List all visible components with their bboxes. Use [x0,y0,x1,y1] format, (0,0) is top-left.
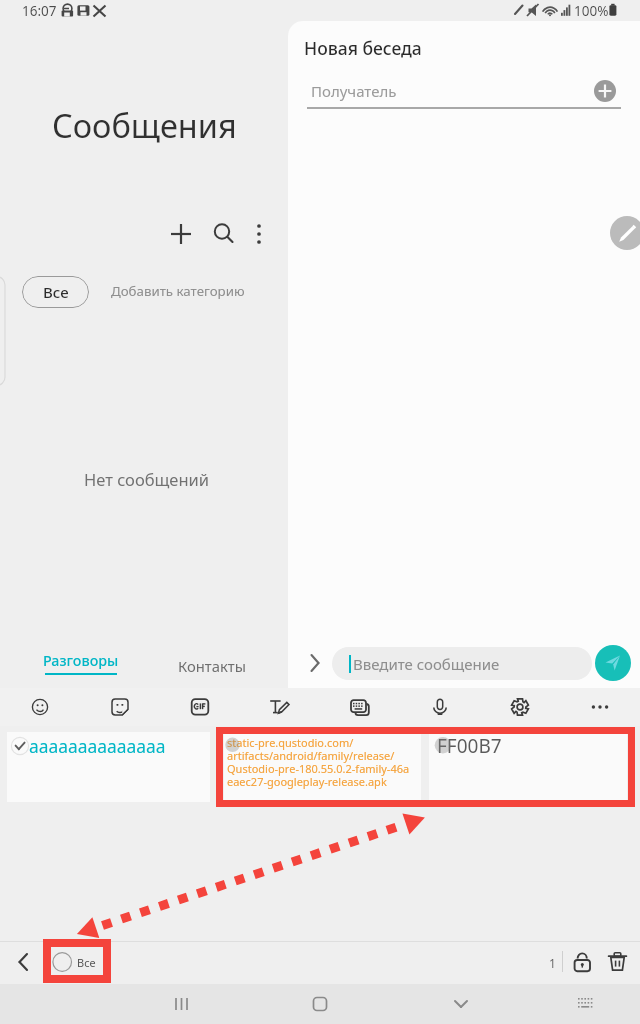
button[interactable]: Stickers [80,688,160,726]
button[interactable]: Compose message [610,216,640,250]
button[interactable]: Search [202,212,246,256]
staticText: FF00B7 [437,733,502,759]
button[interactable]: New conversation [159,212,203,256]
button[interactable]: Введите сообщение [332,647,592,680]
button[interactable]: More [560,688,640,726]
button[interactable]: Voice input [400,688,480,726]
button[interactable]: Send [595,645,631,681]
staticText: 1 [549,955,556,971]
staticText: Все [43,282,69,302]
staticText: Получатель [311,81,397,101]
button[interactable]: Settings [480,688,560,726]
button[interactable]: Show keyboard [555,984,615,1024]
button[interactable]: Delete [602,946,632,976]
staticText: Новая беседа [304,36,422,60]
button[interactable]: Home [290,984,350,1024]
staticText: 16:07 [22,2,57,20]
button[interactable]: Контакты [178,656,246,676]
staticText: Контакты [178,656,246,676]
staticText: Нет сообщений [84,468,210,490]
button[interactable]: Получатель [306,76,596,106]
button[interactable]: FF00B7 [429,732,627,802]
button[interactable]: aaaaaaaaaaaaaa [7,732,210,802]
button[interactable]: Recents [151,984,211,1024]
button[interactable]: Keyboard layout [320,688,400,726]
button[interactable]: Hide keyboard [431,984,491,1024]
button[interactable]: Back [8,946,40,978]
button[interactable]: Expand toolbar [300,648,330,678]
button[interactable]: Разговоры [43,651,119,675]
staticText: Введите сообщение [353,654,500,674]
button[interactable]: Emoji [0,688,80,726]
button[interactable]: Все [52,946,96,978]
button[interactable]: Lock [567,946,597,976]
staticText: Разговоры [43,651,119,670]
button[interactable]: Все [22,276,89,308]
staticText: Добавить категорию [111,282,245,300]
staticText: 100% [574,2,609,20]
button[interactable]: Добавить категорию [111,282,245,300]
staticText: aaaaaaaaaaaaaa [29,734,166,758]
button[interactable]: More options [237,212,281,256]
button[interactable]: GIF [160,688,240,726]
button[interactable]: Add contact [594,80,616,102]
staticText: Сообщения [52,103,237,147]
staticText: static-pre.qustodio.com/ artifacts/andro… [227,735,410,790]
staticText: Все [77,955,96,970]
button[interactable]: static-pre.qustodio.com/ artifacts/andro… [224,732,421,802]
button[interactable]: Handwriting [240,688,320,726]
